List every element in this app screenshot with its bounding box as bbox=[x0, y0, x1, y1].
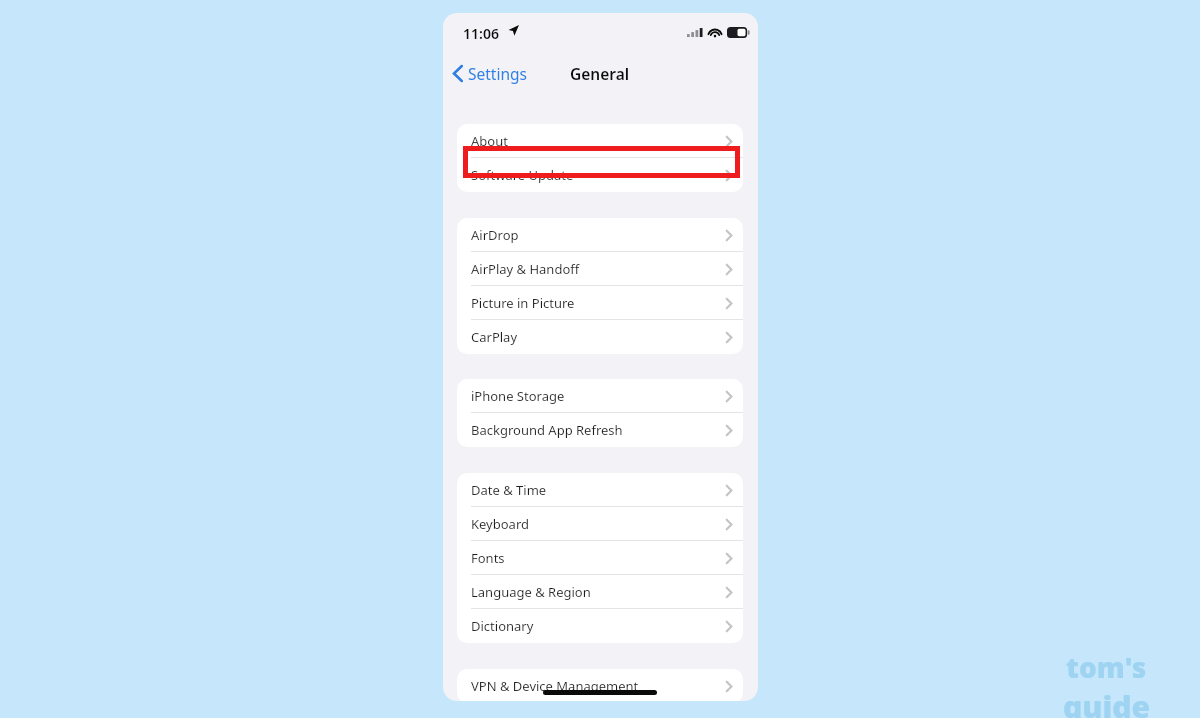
button[interactable]: AirDrop bbox=[457, 218, 743, 252]
staticText: Software Update bbox=[471, 166, 574, 184]
staticText: Language & Region bbox=[471, 583, 591, 601]
button[interactable]: Keyboard bbox=[457, 507, 743, 541]
button[interactable]: Software Update bbox=[457, 158, 743, 192]
staticText: Dictionary bbox=[471, 617, 534, 635]
staticText: VPN & Device Management bbox=[471, 677, 639, 695]
button[interactable]: Settings bbox=[451, 61, 529, 86]
staticText: iPhone Storage bbox=[471, 387, 565, 405]
staticText: AirDrop bbox=[471, 226, 519, 244]
button[interactable]: Dictionary bbox=[457, 609, 743, 643]
staticText: guide bbox=[1063, 686, 1150, 718]
staticText: AirPlay & Handoff bbox=[471, 260, 580, 278]
staticText: Settings bbox=[468, 63, 527, 84]
button[interactable]: Date & Time bbox=[457, 473, 743, 507]
button[interactable]: CarPlay bbox=[457, 320, 743, 354]
staticText: Fonts bbox=[471, 549, 505, 567]
button[interactable]: Background App Refresh bbox=[457, 413, 743, 447]
staticText: About bbox=[471, 132, 508, 150]
button[interactable]: iPhone Storage bbox=[457, 379, 743, 413]
button[interactable]: Picture in Picture bbox=[457, 286, 743, 320]
staticText: 11:06 bbox=[463, 24, 499, 43]
staticText: General bbox=[570, 63, 630, 84]
staticText: tom's bbox=[1066, 648, 1147, 686]
staticText: Picture in Picture bbox=[471, 294, 575, 312]
button[interactable]: VPN & Device Management bbox=[457, 669, 743, 701]
staticText: CarPlay bbox=[471, 328, 518, 346]
staticText: Background App Refresh bbox=[471, 421, 623, 439]
button[interactable]: About bbox=[457, 124, 743, 158]
button[interactable]: AirPlay & Handoff bbox=[457, 252, 743, 286]
button[interactable]: Fonts bbox=[457, 541, 743, 575]
staticText: Date & Time bbox=[471, 481, 547, 499]
staticText: Keyboard bbox=[471, 515, 530, 533]
button[interactable]: Language & Region bbox=[457, 575, 743, 609]
